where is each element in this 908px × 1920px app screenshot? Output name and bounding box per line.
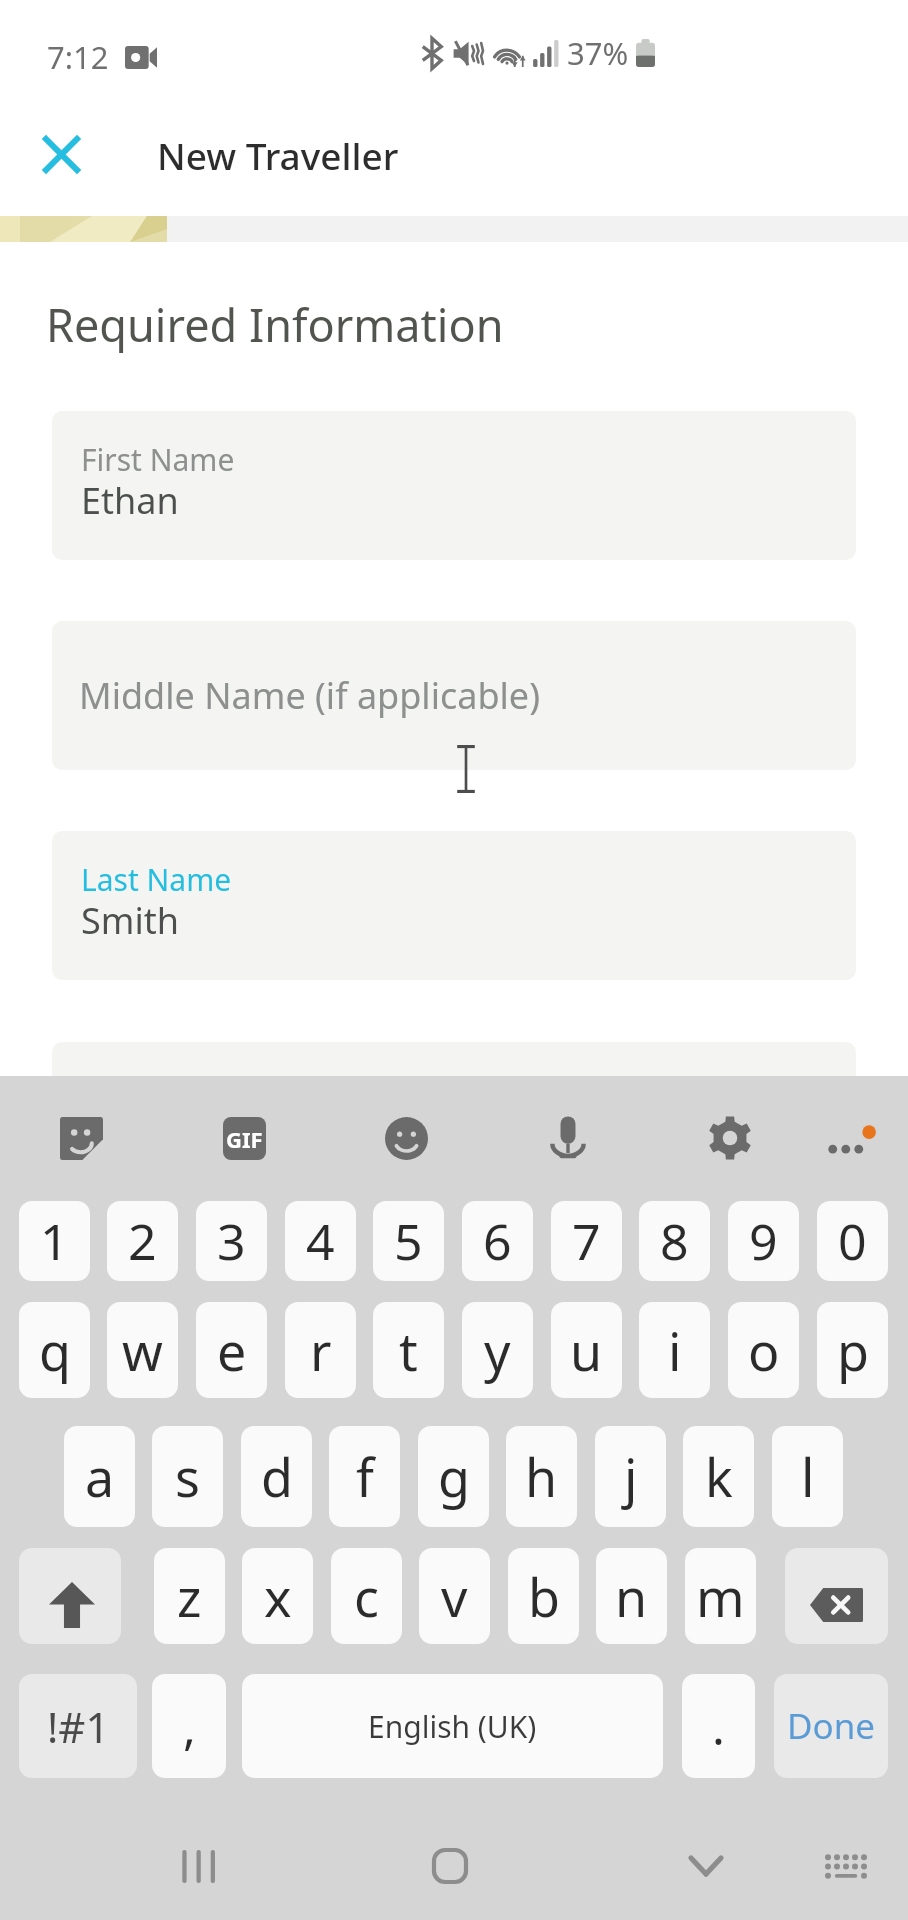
staticText: w [122, 1315, 163, 1386]
button[interactable]: 4 [285, 1201, 356, 1281]
button[interactable]: t [373, 1302, 444, 1398]
staticText: . [712, 1694, 725, 1759]
button[interactable]: r [285, 1302, 356, 1398]
button[interactable]: 1 [19, 1201, 90, 1281]
button[interactable]: c [331, 1548, 402, 1644]
button[interactable]: Settings [694, 1102, 766, 1174]
button[interactable]: y [462, 1302, 533, 1398]
button[interactable]: 9 [728, 1201, 799, 1281]
staticText: First Name [81, 439, 235, 480]
button[interactable]: o [728, 1302, 799, 1398]
button[interactable]: English (UK) [242, 1674, 663, 1778]
staticText: 2 [128, 1207, 157, 1275]
staticText: f [356, 1441, 374, 1512]
button[interactable]: 5 [373, 1201, 444, 1281]
staticText: g [438, 1441, 470, 1512]
button[interactable]: j [595, 1426, 666, 1527]
staticText: 8 [660, 1207, 689, 1275]
button[interactable] [52, 1042, 856, 1191]
staticText: b [528, 1561, 560, 1632]
button[interactable]: More options [811, 1102, 883, 1174]
staticText: k [705, 1441, 733, 1512]
button[interactable]: w [107, 1302, 178, 1398]
button[interactable]: l [772, 1426, 843, 1527]
button[interactable]: i [639, 1302, 710, 1398]
button[interactable]: Middle Name (if applicable) [52, 621, 856, 770]
staticText: , [183, 1694, 196, 1759]
button[interactable]: a [64, 1426, 135, 1527]
button[interactable]: , [152, 1674, 226, 1778]
staticText: 3 [217, 1207, 246, 1275]
button[interactable]: 3 [196, 1201, 267, 1281]
button[interactable]: GIF [208, 1102, 280, 1174]
staticText: y [484, 1315, 511, 1386]
button[interactable]: First Name [52, 411, 856, 560]
button[interactable]: e [196, 1302, 267, 1398]
staticText: l [801, 1441, 815, 1512]
button[interactable]: 7 [551, 1201, 622, 1281]
staticText: s [175, 1441, 200, 1512]
button[interactable]: n [596, 1548, 667, 1644]
button[interactable]: x [242, 1548, 313, 1644]
staticText: h [525, 1441, 558, 1512]
button[interactable]: Recents [142, 1800, 250, 1920]
staticText: 0 [838, 1207, 867, 1275]
button[interactable]: 2 [107, 1201, 178, 1281]
staticText: Required Information [46, 294, 504, 355]
staticText: z [177, 1561, 202, 1632]
button[interactable]: f [329, 1426, 400, 1527]
button[interactable]: p [817, 1302, 888, 1398]
staticText: r [310, 1315, 332, 1386]
staticText: p [837, 1315, 869, 1386]
button[interactable]: Done [774, 1674, 888, 1778]
button[interactable]: Voice input [532, 1102, 604, 1174]
staticText: d [261, 1441, 293, 1512]
staticText: English (UK) [368, 1706, 537, 1747]
button[interactable]: u [551, 1302, 622, 1398]
staticText: 6 [483, 1207, 512, 1275]
button[interactable]: Keyboard layout [792, 1800, 900, 1920]
button[interactable]: Emoji [370, 1102, 442, 1174]
button[interactable]: b [508, 1548, 579, 1644]
button[interactable]: 0 [817, 1201, 888, 1281]
staticText: !#1 [47, 1698, 110, 1755]
button[interactable]: d [241, 1426, 312, 1527]
button[interactable]: z [154, 1548, 225, 1644]
button[interactable]: Stickers [45, 1102, 117, 1174]
staticText: GIF [226, 1124, 263, 1154]
button[interactable]: k [683, 1426, 754, 1527]
staticText: 9 [749, 1207, 778, 1275]
staticText: e [217, 1315, 247, 1386]
staticText: New Traveller [157, 130, 399, 180]
button[interactable]: s [152, 1426, 223, 1527]
button[interactable]: q [19, 1302, 90, 1398]
button[interactable]: Close [19, 112, 103, 196]
staticText: u [570, 1315, 603, 1386]
button[interactable]: v [419, 1548, 490, 1644]
button[interactable]: g [418, 1426, 489, 1527]
button[interactable]: Backspace [785, 1548, 888, 1644]
button[interactable]: 8 [639, 1201, 710, 1281]
button[interactable]: Last Name [52, 831, 856, 980]
staticText: c [354, 1561, 379, 1632]
button[interactable]: 6 [462, 1201, 533, 1281]
staticText: 1 [40, 1207, 69, 1275]
button[interactable]: m [685, 1548, 756, 1644]
button[interactable]: h [506, 1426, 577, 1527]
button[interactable]: Shift [19, 1548, 121, 1644]
staticText: o [748, 1315, 780, 1386]
staticText: v [441, 1561, 468, 1632]
staticText: m [696, 1561, 745, 1632]
staticText: Done [787, 1702, 876, 1750]
staticText: 7 [572, 1207, 601, 1275]
staticText: t [399, 1315, 418, 1386]
staticText: 4 [306, 1207, 335, 1275]
staticText: i [668, 1315, 682, 1386]
button[interactable]: Home [396, 1800, 504, 1920]
button[interactable]: !#1 [19, 1674, 137, 1778]
staticText: Middle Name (if applicable) [79, 671, 540, 720]
button[interactable]: Hide keyboard [652, 1800, 760, 1920]
staticText: 7:12 [47, 36, 109, 78]
staticText: Last Name [81, 859, 232, 900]
button[interactable]: . [682, 1674, 755, 1778]
